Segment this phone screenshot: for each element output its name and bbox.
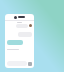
other: Send: [28, 62, 32, 66]
